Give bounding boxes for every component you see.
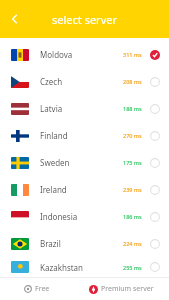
staticText: Czech [40, 76, 63, 87]
staticText: 186 ms [123, 213, 142, 220]
button[interactable]: Indonesia [0, 203, 169, 230]
staticText: Indonesia [40, 211, 78, 222]
staticText: Premium server [101, 284, 154, 294]
button[interactable]: Sweden [0, 149, 169, 176]
button[interactable]: Moldova [0, 41, 169, 68]
staticText: 175 ms [123, 159, 142, 166]
button[interactable]: Ireland [0, 176, 169, 203]
button[interactable]: Latvia [0, 95, 169, 122]
staticText: Moldova [40, 49, 73, 60]
button[interactable]: Finland [0, 122, 169, 149]
staticText: 239 ms [123, 186, 142, 193]
staticText: Ireland [40, 184, 67, 195]
staticText: 255 ms [123, 264, 142, 271]
staticText: 208 ms [123, 78, 142, 85]
button[interactable]: Kazakhstan [0, 257, 169, 277]
staticText: select server [52, 12, 117, 27]
staticText: Finland [40, 130, 68, 141]
button[interactable]: Back [2, 6, 28, 32]
staticText: Kazakhstan [40, 262, 84, 273]
staticText: 224 ms [123, 240, 142, 247]
staticText: 188 ms [123, 105, 142, 112]
staticText: Latvia [40, 103, 63, 114]
button[interactable]: Free [0, 278, 73, 300]
staticText: Free [35, 284, 50, 294]
staticText: 270 ms [123, 132, 142, 139]
staticText: Sweden [40, 157, 70, 168]
button[interactable]: Premium server [73, 278, 169, 300]
button[interactable]: Czech [0, 68, 169, 95]
button[interactable]: Brazil [0, 230, 169, 257]
staticText: 311 ms [123, 51, 142, 58]
staticText: Brazil [40, 238, 61, 249]
